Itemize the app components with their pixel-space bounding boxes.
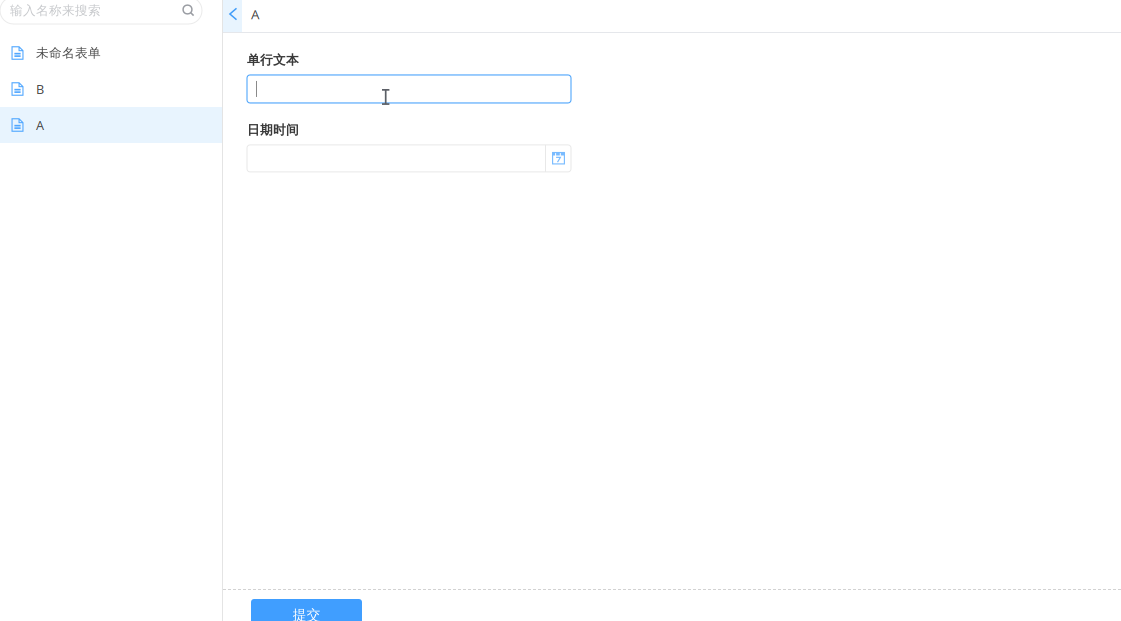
button[interactable]: Pick date (546, 145, 571, 172)
button[interactable]: A (0, 107, 222, 143)
button[interactable]: B (0, 71, 222, 107)
button[interactable]: 单行文本 (247, 75, 571, 103)
button[interactable]: Back (223, 0, 242, 32)
button[interactable]: 日期时间 (247, 145, 545, 172)
button[interactable]: 提交 (251, 599, 362, 621)
staticText: 单行文本 (247, 52, 299, 68)
staticText: B (36, 80, 44, 98)
staticText: 日期时间 (247, 122, 299, 138)
staticText: 提交 (292, 606, 320, 621)
staticText: 未命名表单 (36, 45, 101, 61)
staticText: A (36, 116, 44, 134)
button[interactable]: 输入名称来搜索 (0, 0, 202, 24)
button[interactable]: 未命名表单 (0, 35, 222, 71)
staticText: A (251, 5, 260, 23)
staticText: 输入名称来搜索 (10, 2, 101, 18)
